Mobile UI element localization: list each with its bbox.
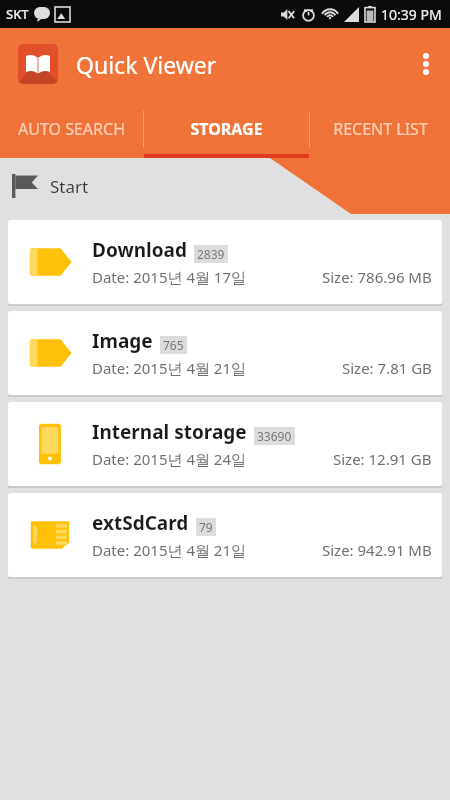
button[interactable]: RECENT LIST [310,100,450,158]
staticText: 2839 [197,246,225,262]
staticText: 765 [163,337,184,353]
staticText: Size: 786.96 MB [322,267,432,287]
staticText: Date: 2015년 4월 24일 [92,449,247,469]
staticText: SKT [6,5,29,23]
staticText: Image [92,328,153,354]
button[interactable]: AUTO SEARCH [0,100,143,158]
staticText: 79 [199,519,213,535]
button[interactable]: extSdCard [8,493,442,577]
staticText: Start [50,175,89,198]
staticText: Internal storage [92,419,247,445]
button[interactable]: Download [8,220,442,304]
staticText: Date: 2015년 4월 21일 [92,540,247,560]
staticText: Size: 7.81 GB [342,358,432,378]
staticText: 10:39 PM [381,5,442,24]
staticText: Quick Viewer [76,49,217,80]
button[interactable]: Image [8,311,442,395]
staticText: Date: 2015년 4월 17일 [92,267,247,287]
staticText: AUTO SEARCH [18,118,125,140]
staticText: STORAGE [190,118,263,140]
staticText: Date: 2015년 4월 21일 [92,358,247,378]
staticText: Size: 12.91 GB [333,449,432,469]
staticText: extSdCard [92,510,189,536]
staticText: RECENT LIST [333,118,428,140]
button[interactable]: More options [402,28,450,100]
button[interactable]: Start [12,158,89,214]
staticText: Download [92,237,187,263]
button[interactable]: STORAGE [144,100,309,158]
staticText: Size: 942.91 MB [322,540,432,560]
staticText: 33690 [257,428,292,444]
button[interactable]: Internal storage [8,402,442,486]
